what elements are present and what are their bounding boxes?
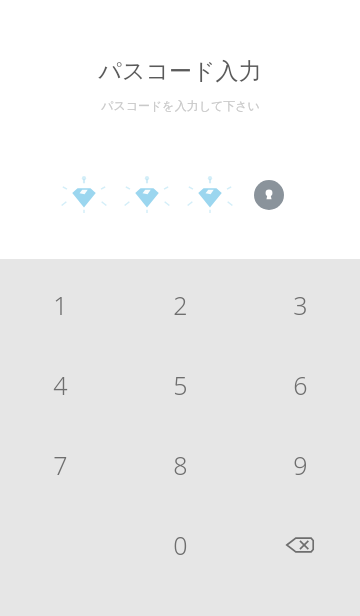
staticText: 7 <box>53 448 68 482</box>
staticText: 9 <box>293 448 308 482</box>
other: Locked <box>254 180 284 210</box>
button[interactable]: 0 <box>120 505 240 585</box>
staticText: 8 <box>173 448 188 482</box>
staticText: 6 <box>293 368 308 402</box>
staticText: 0 <box>173 528 188 562</box>
staticText: パスコードを入力して下さい <box>101 98 260 113</box>
button[interactable]: 4 <box>0 345 120 425</box>
staticText: 5 <box>173 368 188 402</box>
button[interactable]: Backspace <box>240 505 360 585</box>
button[interactable]: 8 <box>120 425 240 505</box>
staticText: 3 <box>293 288 308 322</box>
button[interactable]: 3 <box>240 265 360 345</box>
staticText: パスコード入力 <box>98 57 262 86</box>
staticText: 1 <box>53 288 68 322</box>
button[interactable]: 1 <box>0 265 120 345</box>
button[interactable]: 5 <box>120 345 240 425</box>
button[interactable]: 9 <box>240 425 360 505</box>
button[interactable]: 2 <box>120 265 240 345</box>
staticText: 4 <box>53 368 68 402</box>
staticText: 2 <box>173 288 188 322</box>
button[interactable]: 6 <box>240 345 360 425</box>
button[interactable]: 7 <box>0 425 120 505</box>
